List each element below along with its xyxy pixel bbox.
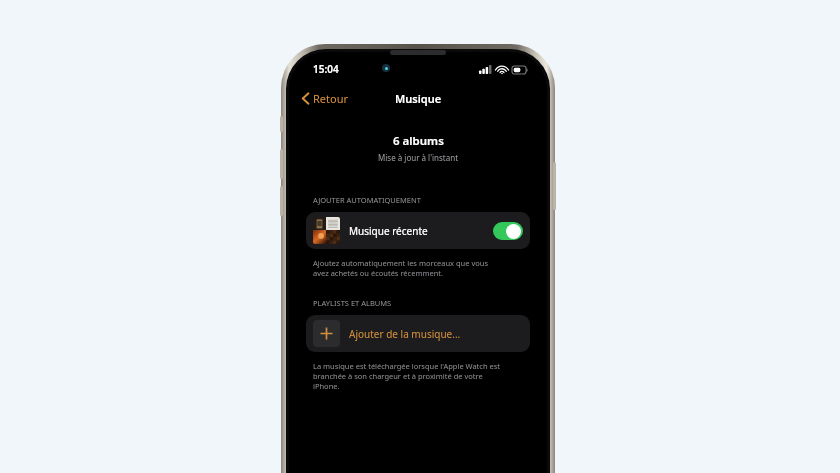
staticText: 15:04 — [313, 62, 339, 76]
staticText: La musique est téléchargée lorsque l'App… — [313, 361, 501, 391]
staticText: PLAYLISTS ET ALBUMS — [313, 298, 392, 308]
button[interactable]: Retour — [289, 87, 359, 110]
staticText: AJOUTER AUTOMATIQUEMENT — [313, 195, 421, 205]
staticText: Ajouter de la musique... — [349, 327, 461, 341]
button[interactable]: Musique récente activée — [493, 222, 523, 240]
staticText: Musique récente — [349, 224, 428, 238]
staticText: 6 albums — [393, 133, 444, 149]
staticText: Musique — [395, 91, 442, 106]
staticText: Mise à jour à l'instant — [378, 152, 459, 163]
button[interactable]: Musique récente — [306, 212, 530, 249]
staticText: Ajoutez automatiquement les morceaux que… — [313, 258, 488, 278]
staticText: Retour — [313, 91, 349, 106]
button[interactable]: Ajouter de la musique... — [306, 315, 530, 352]
